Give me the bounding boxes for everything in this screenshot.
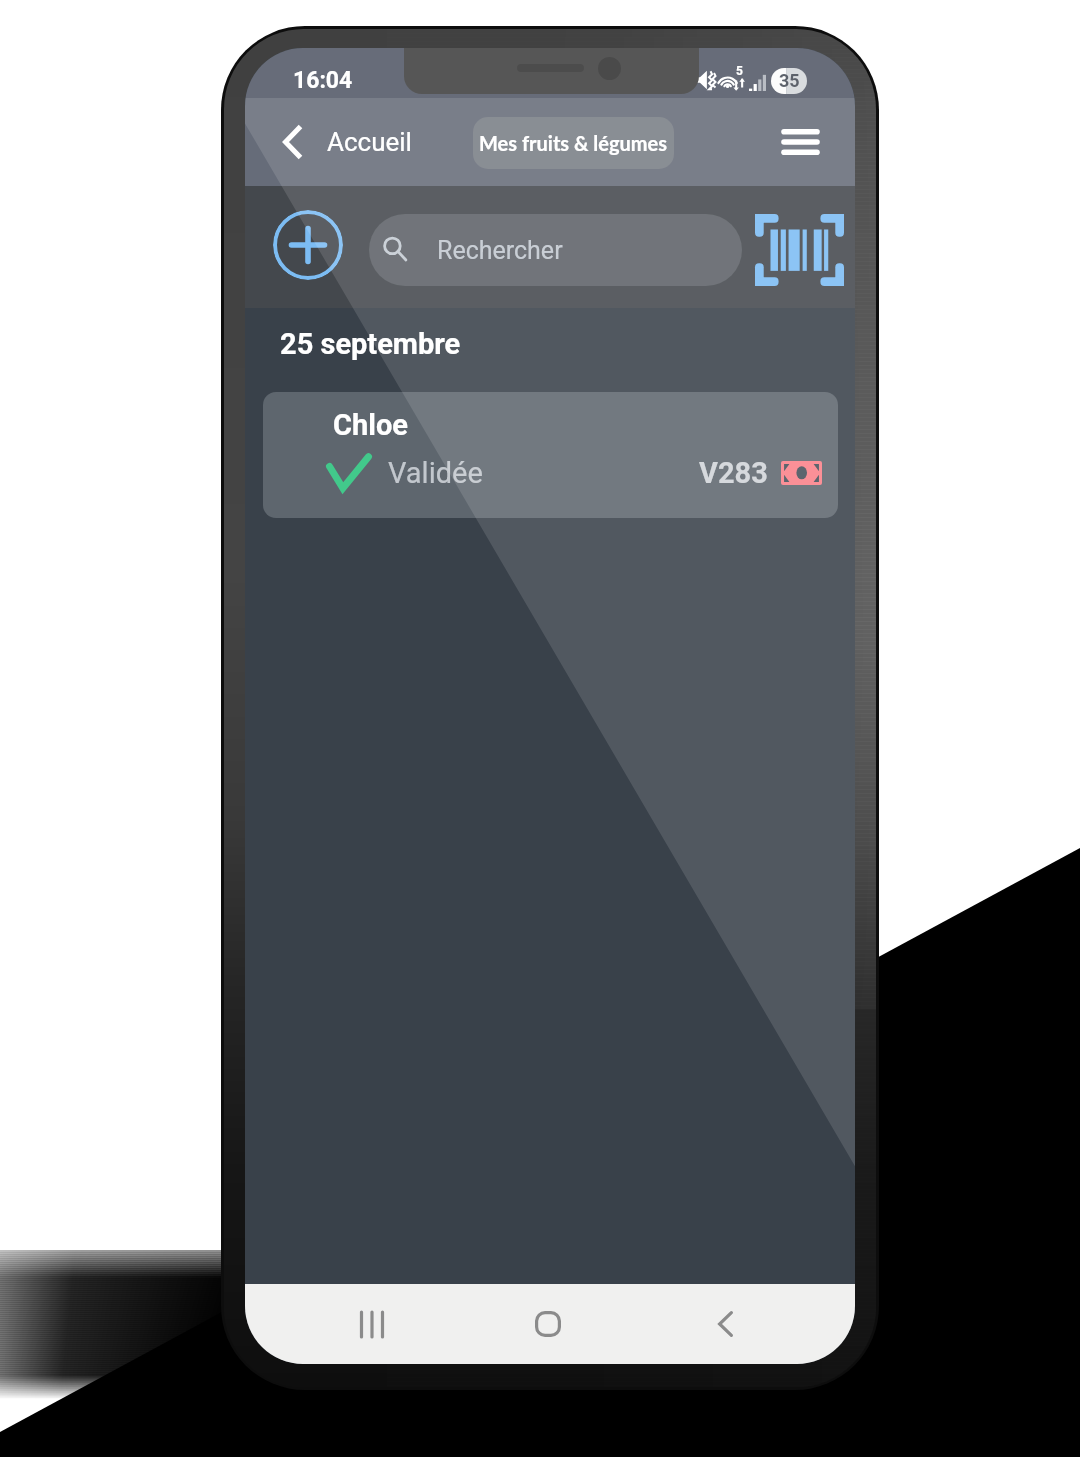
staticText: 25 septembre [280,327,461,361]
button[interactable]: Scanner un code-barres [755,214,844,286]
button[interactable]: Rechercher [369,214,742,286]
button[interactable]: Accueil [327,127,412,157]
staticText: Chloe [333,408,408,442]
button[interactable]: Menu [769,118,832,166]
button[interactable]: Applications récentes [344,1296,400,1352]
staticText: V283 [699,456,768,490]
button[interactable]: Chloe [263,392,838,518]
button[interactable]: Mes fruits & légumes [473,117,674,169]
button[interactable]: Retour [697,1296,753,1352]
button[interactable]: Accueil [520,1296,576,1352]
button[interactable]: Retour [270,114,316,170]
staticText: 16:04 [293,67,353,94]
button[interactable]: Ajouter [273,210,343,280]
staticText: 5 [736,64,743,78]
staticText: Validée [388,456,483,490]
staticText: Mes fruits & légumes [479,131,668,155]
staticText: Rechercher [437,236,563,265]
staticText: 35 [779,70,800,91]
